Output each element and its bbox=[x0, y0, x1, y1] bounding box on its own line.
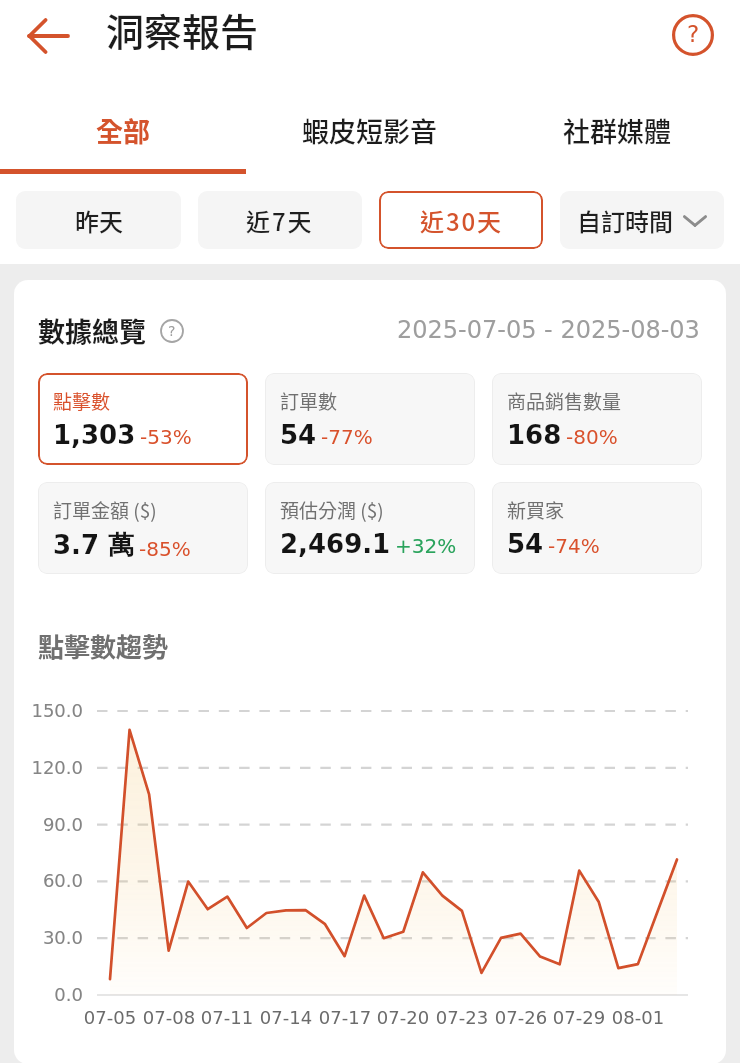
staticText: ? bbox=[687, 21, 700, 48]
staticText: 點擊數 bbox=[53, 387, 111, 415]
button[interactable]: 近7天 bbox=[198, 191, 362, 249]
staticText: 全部 bbox=[96, 111, 150, 150]
staticText: 08-01 bbox=[603, 1007, 673, 1028]
staticText: -74% bbox=[548, 534, 600, 557]
button[interactable]: 新買家 bbox=[492, 482, 702, 574]
staticText: -77% bbox=[321, 425, 373, 448]
staticText: +32% bbox=[395, 534, 457, 557]
staticText: 訂單數 bbox=[280, 387, 338, 415]
staticText: 近30天 bbox=[420, 203, 503, 238]
staticText: 數據總覽 bbox=[38, 311, 146, 350]
button[interactable]: 點擊數 bbox=[38, 373, 248, 465]
staticText: 07-14 bbox=[251, 1007, 321, 1028]
staticText: -53% bbox=[140, 425, 192, 448]
staticText: 蝦皮短影音 bbox=[302, 111, 437, 150]
staticText: 150.0 bbox=[14, 700, 83, 721]
staticText: 07-29 bbox=[544, 1007, 614, 1028]
staticText: 54 bbox=[507, 529, 544, 559]
staticText: -85% bbox=[139, 537, 191, 560]
staticText: 90.0 bbox=[14, 814, 83, 835]
staticText: 近7天 bbox=[246, 203, 314, 238]
staticText: 3.7 萬 bbox=[53, 529, 135, 562]
staticText: 新買家 bbox=[507, 496, 565, 524]
button[interactable]: 社群媒體 bbox=[493, 88, 740, 172]
staticText: 168 bbox=[507, 420, 562, 450]
button[interactable]: 訂單數 bbox=[265, 373, 475, 465]
staticText: 120.0 bbox=[14, 757, 83, 778]
staticText: 自訂時間 bbox=[577, 203, 673, 238]
button[interactable]: 商品銷售數量 bbox=[492, 373, 702, 465]
staticText: 54 bbox=[280, 420, 317, 450]
button[interactable]: 昨天 bbox=[16, 191, 181, 249]
staticText: 訂單金額 ($) bbox=[53, 496, 157, 524]
staticText: -80% bbox=[566, 425, 618, 448]
staticText: 2,469.1 bbox=[280, 529, 391, 559]
staticText: 60.0 bbox=[14, 870, 83, 891]
staticText: 07-17 bbox=[310, 1007, 380, 1028]
staticText: 30.0 bbox=[14, 927, 83, 948]
staticText: 1,303 bbox=[53, 420, 136, 450]
staticText: 洞察報告 bbox=[106, 2, 259, 57]
staticText: 07-08 bbox=[134, 1007, 204, 1028]
staticText: 點擊數趨勢 bbox=[38, 627, 169, 665]
staticText: 社群媒體 bbox=[563, 111, 671, 150]
staticText: 0.0 bbox=[14, 984, 83, 1005]
staticText: 07-20 bbox=[368, 1007, 438, 1028]
staticText: 商品銷售數量 bbox=[507, 387, 622, 415]
staticText: 昨天 bbox=[75, 203, 123, 238]
staticText: ? bbox=[168, 323, 176, 339]
button[interactable]: 預估分潤 ($) bbox=[265, 482, 475, 574]
staticText: 07-26 bbox=[486, 1007, 556, 1028]
button[interactable]: 蝦皮短影音 bbox=[246, 88, 493, 172]
staticText: 預估分潤 ($) bbox=[280, 496, 384, 524]
other: Info bbox=[160, 319, 184, 343]
button[interactable]: Back bbox=[8, 5, 88, 67]
button[interactable]: 自訂時間 bbox=[560, 191, 724, 249]
staticText: 07-05 bbox=[75, 1007, 145, 1028]
staticText: 2025-07-05 - 2025-08-03 bbox=[397, 316, 700, 344]
button[interactable]: 全部 bbox=[0, 88, 246, 172]
staticText: 07-11 bbox=[192, 1007, 262, 1028]
button[interactable]: 近30天 bbox=[379, 191, 543, 249]
staticText: 07-23 bbox=[427, 1007, 497, 1028]
button[interactable]: Help bbox=[663, 5, 723, 65]
button[interactable]: 訂單金額 ($) bbox=[38, 482, 248, 574]
button[interactable]: 數據總覽 bbox=[38, 311, 184, 350]
